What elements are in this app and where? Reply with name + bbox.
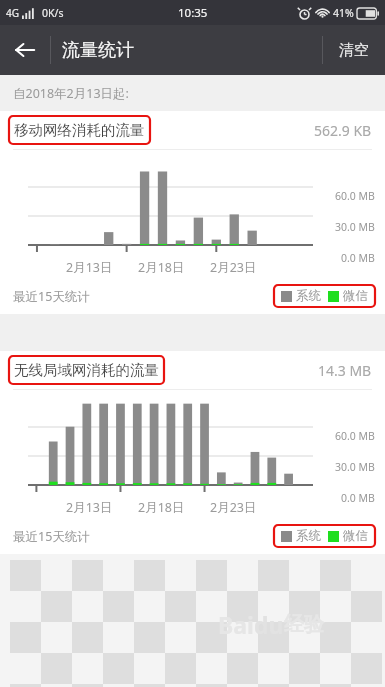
staticText: 0.0 MB (341, 251, 375, 265)
staticText: 2月13日 (66, 499, 113, 516)
staticText: du (254, 609, 284, 640)
staticText: 微信 (343, 288, 368, 304)
staticText: 2月18日 (138, 259, 185, 276)
staticText: 0K/s (42, 6, 64, 20)
staticText: 0.0 MB (341, 491, 375, 505)
staticText: 2月13日 (66, 259, 113, 276)
staticText: 系统 (296, 288, 321, 304)
staticText: 60.0 MB (335, 189, 375, 203)
staticText: 自2018年2月13日起: (13, 85, 129, 102)
staticText: 30.0 MB (335, 460, 375, 474)
staticText: 10:35 (178, 5, 208, 21)
button[interactable]: 移动网络消耗的流量 (0, 111, 385, 149)
staticText: 系统 (296, 528, 321, 544)
button[interactable]: 无线局域网消耗的流量 (0, 351, 385, 389)
staticText: 14.3 MB (318, 361, 372, 380)
staticText: 最近15天统计 (13, 528, 90, 545)
staticText: 562.9 KB (314, 121, 372, 140)
staticText: 41% (333, 6, 354, 20)
staticText: 最近15天统计 (13, 288, 90, 305)
staticText: 无线局域网消耗的流量 (14, 361, 159, 379)
staticText: 清空 (339, 41, 369, 60)
staticText: 流量统计 (62, 39, 134, 62)
staticText: 60.0 MB (335, 429, 375, 443)
button[interactable]: 清空 (323, 25, 385, 75)
button[interactable]: 返回 (0, 25, 50, 75)
staticText: 30.0 MB (335, 220, 375, 234)
staticText: 4G (6, 6, 19, 20)
staticText: 2月23日 (210, 499, 257, 516)
staticText: 2月18日 (138, 499, 185, 516)
staticText: 2月23日 (210, 259, 257, 276)
staticText: 微信 (343, 528, 368, 544)
staticText: 经验 (284, 612, 324, 637)
staticText: 移动网络消耗的流量 (14, 121, 145, 139)
staticText: Bai (218, 609, 254, 640)
